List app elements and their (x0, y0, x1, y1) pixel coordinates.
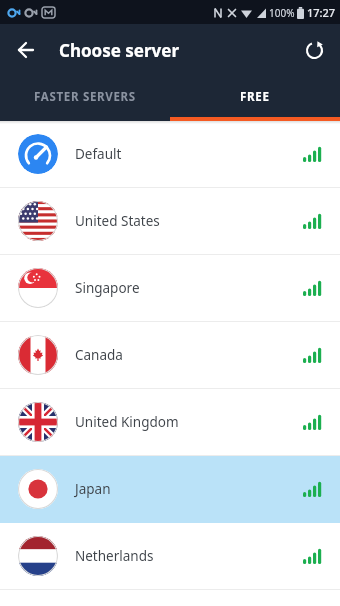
button[interactable]: United Kingdom (0, 389, 340, 455)
staticText: Netherlands (75, 547, 154, 565)
button[interactable]: Singapore (0, 255, 340, 321)
staticText: Canada (75, 346, 123, 364)
button[interactable]: FREE (170, 76, 340, 117)
button[interactable]: Japan (0, 456, 340, 522)
button[interactable] (288, 24, 340, 76)
staticText: 100% (269, 6, 295, 20)
staticText: 17:27 (307, 5, 336, 20)
button[interactable]: FASTER SERVERS (0, 76, 170, 117)
button[interactable]: Default (0, 121, 340, 187)
staticText: FASTER SERVERS (34, 89, 136, 105)
staticText: United States (75, 212, 160, 230)
staticText: United Kingdom (75, 413, 179, 431)
staticText: Default (75, 145, 122, 163)
button[interactable] (0, 24, 52, 76)
button[interactable]: United States (0, 188, 340, 254)
button[interactable]: Netherlands (0, 523, 340, 589)
staticText: Singapore (75, 279, 140, 297)
button[interactable]: Canada (0, 322, 340, 388)
staticText: FREE (240, 89, 270, 105)
staticText: Choose server (59, 39, 180, 62)
staticText: Japan (75, 480, 111, 498)
